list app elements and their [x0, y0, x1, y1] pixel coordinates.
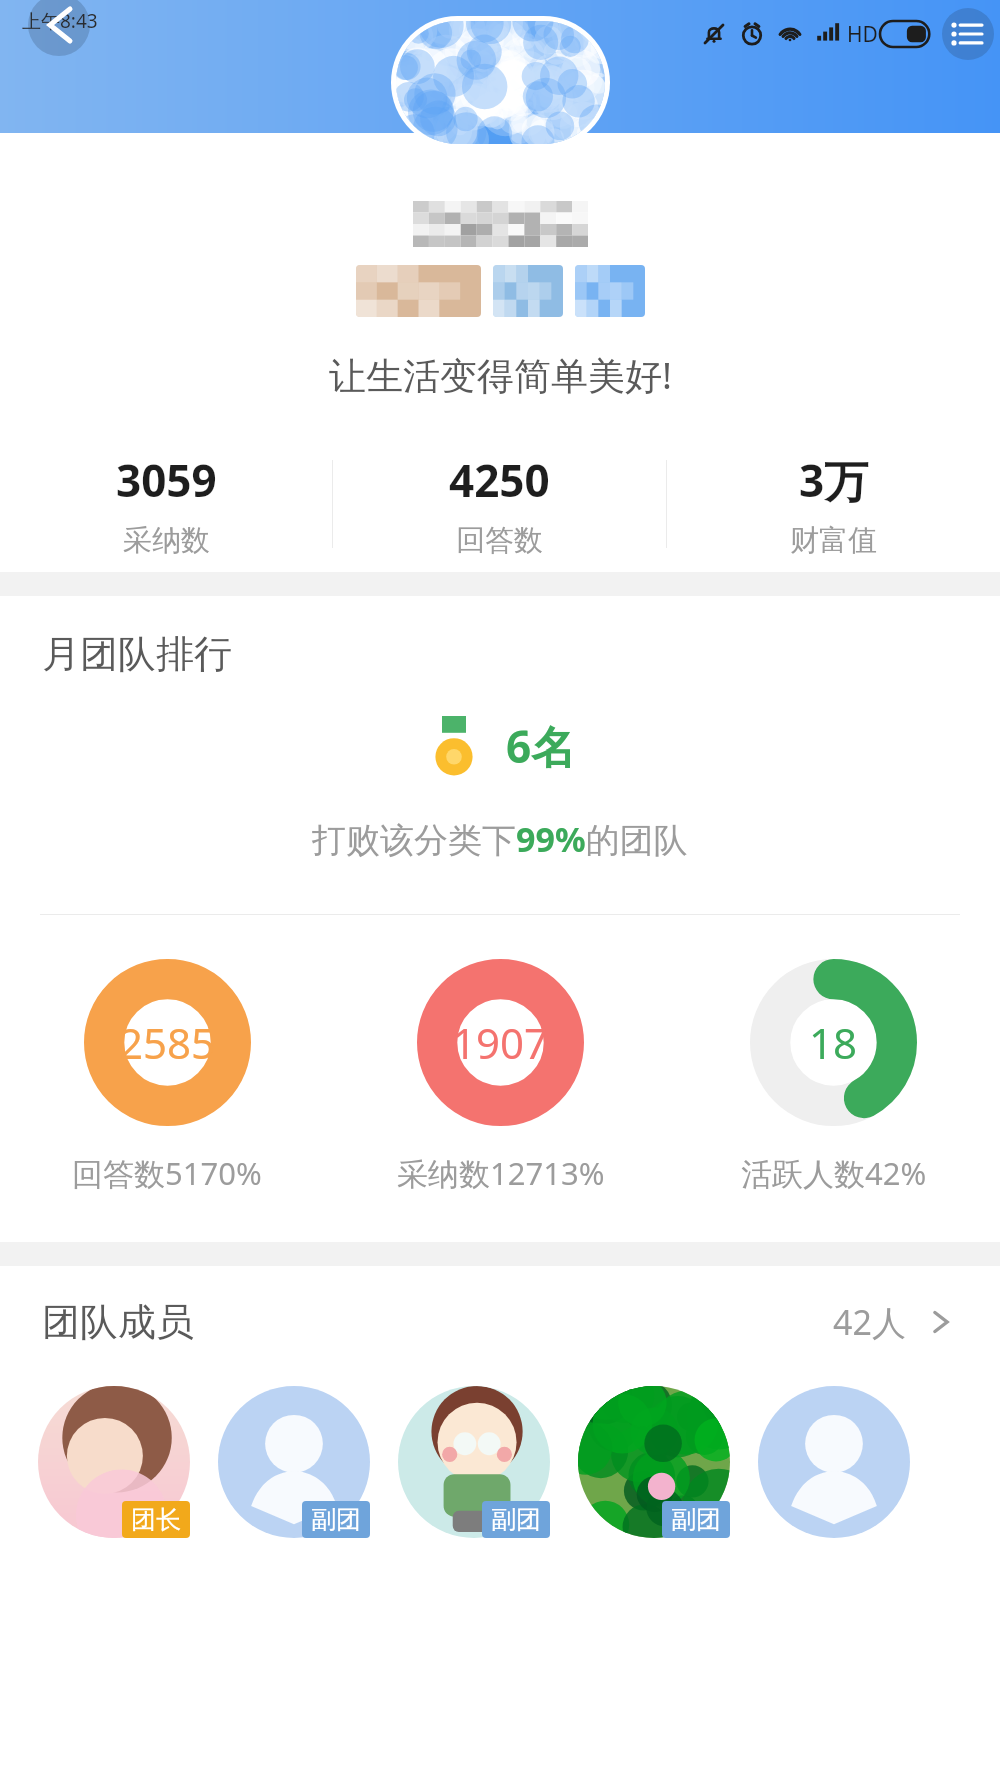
button[interactable]: 副团 — [578, 1386, 730, 1538]
staticText: 副团 — [311, 1504, 361, 1535]
staticText: 月团队排行 — [42, 630, 232, 678]
staticText: 采纳数12713% — [397, 1152, 605, 1194]
button[interactable]: 团长 — [38, 1386, 190, 1538]
staticText: 6名 — [506, 716, 576, 776]
button[interactable]: 副团 — [218, 1386, 370, 1538]
button[interactable] — [356, 265, 481, 317]
staticText: 团长 — [131, 1504, 181, 1535]
button[interactable]: 团队成员 — [42, 1298, 958, 1346]
button[interactable]: 2585 — [0, 959, 334, 1194]
button[interactable]: Back — [28, 0, 90, 56]
staticText: 1907 — [452, 1014, 549, 1071]
staticText: 采纳数 — [123, 522, 210, 559]
button[interactable]: 1907 — [334, 959, 667, 1194]
staticText: 42人 — [833, 1299, 906, 1345]
staticText: 4250 — [449, 450, 550, 510]
button[interactable]: Menu — [942, 8, 994, 60]
staticText: 回答数5170% — [72, 1152, 262, 1194]
staticText: 上午8:43 — [22, 8, 98, 34]
button[interactable]: 4250 — [333, 450, 666, 559]
button[interactable]: 副团 — [398, 1386, 550, 1538]
button[interactable]: 3万 — [667, 450, 1000, 559]
button[interactable] — [493, 265, 563, 317]
staticText: 团队成员 — [42, 1298, 194, 1346]
staticText: 副团 — [491, 1504, 541, 1535]
staticText: HD — [847, 20, 878, 49]
staticText: 打败该分类下99%的团队 — [312, 816, 688, 862]
staticText: 活跃人数42% — [741, 1152, 927, 1194]
staticText: 回答数 — [456, 522, 543, 559]
staticText: 2585 — [119, 1014, 216, 1071]
button[interactable]: 3059 — [0, 450, 332, 559]
staticText: 3万 — [799, 450, 869, 510]
staticText: 3059 — [116, 450, 217, 510]
staticText: 让生活变得简单美好! — [329, 349, 672, 400]
button[interactable] — [575, 265, 645, 317]
button[interactable] — [758, 1386, 910, 1538]
staticText: 财富值 — [790, 522, 877, 559]
button[interactable] — [396, 21, 605, 144]
staticText: 18 — [809, 1014, 858, 1071]
staticText: 副团 — [671, 1504, 721, 1535]
button[interactable]: 18 — [667, 959, 1000, 1194]
